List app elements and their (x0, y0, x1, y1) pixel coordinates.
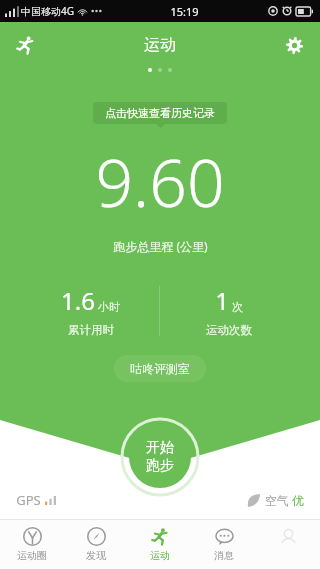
button[interactable]: 开始 (121, 418, 199, 496)
staticText: 优 (292, 493, 304, 508)
staticText: 开始 (146, 439, 174, 457)
staticText: 1.6 (61, 284, 95, 317)
button[interactable]: Running records (8, 27, 44, 63)
staticText: 咕咚评测室 (130, 361, 190, 376)
button[interactable]: Settings (276, 27, 312, 63)
staticText: 1 (215, 284, 229, 317)
staticText: 中国移动4G (21, 4, 74, 18)
staticText: 运动 (144, 35, 176, 55)
staticText: 运动 (150, 549, 170, 562)
staticText: 运动次数 (206, 323, 252, 337)
staticText: 次 (232, 300, 243, 314)
staticText: 点击快速查看历史记录 (105, 106, 215, 120)
button[interactable]: 咕咚评测室 (114, 355, 206, 382)
button[interactable]: 点击快速查看历史记录 (93, 102, 227, 124)
staticText: 9.60 (95, 136, 225, 226)
staticText: 空气 (265, 493, 289, 508)
button[interactable]: 发现 (64, 519, 128, 569)
staticText: 跑步 (146, 457, 174, 475)
button[interactable]: Me (256, 519, 320, 569)
button[interactable]: 运动圈 (0, 519, 64, 569)
staticText: 发现 (86, 549, 106, 562)
button[interactable]: 空气 (245, 491, 306, 510)
staticText: 累计用时 (68, 323, 114, 337)
button[interactable]: 运动 (128, 519, 192, 569)
button[interactable]: GPS (14, 489, 58, 511)
button[interactable]: 消息 (192, 519, 256, 569)
staticText: 小时 (98, 300, 120, 314)
staticText: 运动圈 (17, 549, 47, 562)
staticText: 消息 (214, 549, 234, 562)
staticText: 跑步总里程 (公里) (113, 238, 208, 254)
staticText: GPS (16, 491, 41, 509)
staticText: 15:19 (170, 4, 199, 19)
